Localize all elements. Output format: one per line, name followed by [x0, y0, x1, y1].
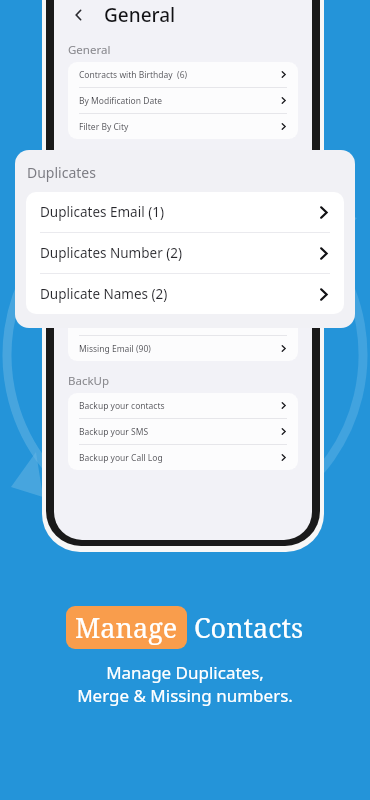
button[interactable]: Backup your contacts — [68, 393, 298, 418]
staticText: Missing Phone Number (2) — [79, 291, 186, 303]
button[interactable]: Filter By City — [68, 114, 298, 139]
staticText: Duplicate Names (2) — [79, 232, 160, 244]
staticText: General — [68, 42, 111, 58]
staticText: Missing — [68, 264, 110, 280]
staticText: Duplicates Number (2) — [40, 244, 183, 262]
staticText: Manage — [75, 609, 178, 646]
staticText: Duplicates Email (1) — [40, 203, 164, 221]
button[interactable]: Backup your Call Log — [68, 445, 298, 470]
button[interactable]: Duplicate Names (2) — [26, 274, 344, 314]
staticText: Duplicates Number (2) — [79, 206, 169, 218]
staticText: Missing First & Last Name (2) — [79, 317, 195, 329]
staticText: Duplicate Names (2) — [40, 285, 168, 303]
button[interactable]: Duplicates Number (2) — [26, 233, 344, 273]
staticText: Missing Email (90) — [79, 343, 151, 355]
staticText: Manage Duplicates, Merge & Missing numbe… — [77, 661, 293, 707]
button[interactable]: By Modification Date — [68, 88, 298, 113]
button[interactable]: Contracts with Birthday (6) — [68, 62, 298, 87]
staticText: Contracts with Birthday (6) — [79, 69, 188, 81]
button[interactable]: Duplicates Email (1) — [68, 173, 298, 198]
button[interactable]: Missing Email (90) — [68, 336, 298, 361]
button[interactable]: Back — [68, 4, 90, 26]
button[interactable]: Missing First & Last Name (2) — [68, 310, 298, 335]
button[interactable]: Backup your SMS — [68, 419, 298, 444]
staticText: BackUp — [68, 373, 110, 389]
button[interactable]: Duplicate Names (2) — [68, 225, 298, 250]
staticText: Backup your Call Log — [79, 452, 163, 464]
staticText: By Modification Date — [79, 95, 163, 107]
button[interactable]: Duplicates Number (2) — [68, 199, 298, 224]
staticText: Backup your SMS — [79, 426, 149, 438]
staticText: Contacts — [194, 609, 304, 646]
staticText: General — [104, 2, 176, 28]
button[interactable]: Missing Phone Number (2) — [68, 284, 298, 309]
staticText: Duplicates — [27, 163, 96, 182]
staticText: Backup your contacts — [79, 400, 165, 412]
staticText: Filter By City — [79, 121, 129, 133]
button[interactable]: Duplicates Email (1) — [26, 192, 344, 232]
